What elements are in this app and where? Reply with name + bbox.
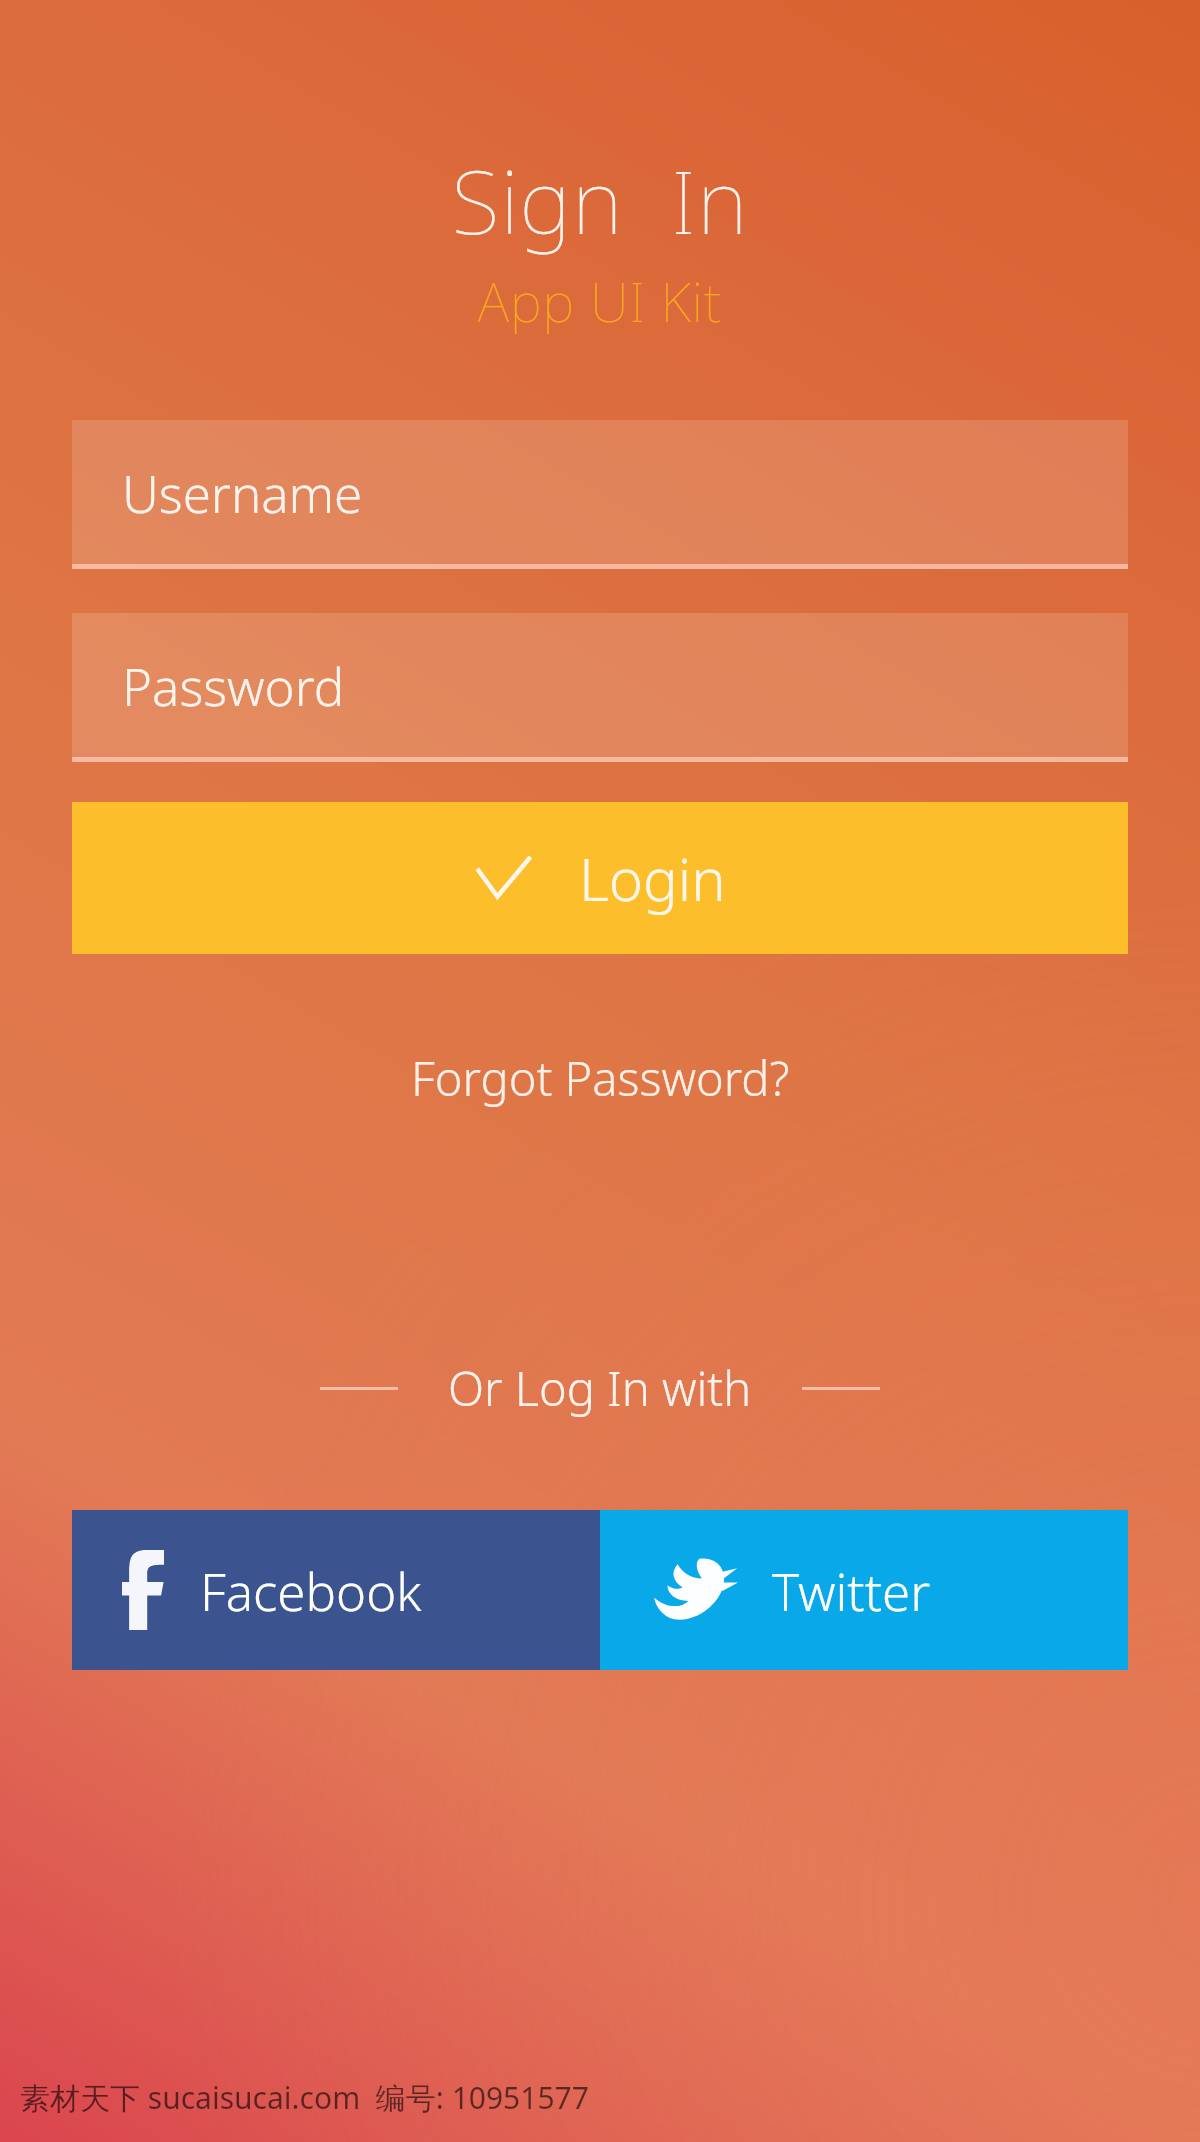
button[interactable]: Login: [72, 802, 1128, 954]
staticText: Sign In: [0, 140, 1200, 260]
button[interactable]: Facebook logo: [72, 1510, 600, 1670]
button[interactable]: Forgot Password?: [0, 1046, 1200, 1110]
staticText: Forgot Password?: [411, 1046, 790, 1110]
staticText: App UI Kit: [0, 264, 1200, 338]
button[interactable]: Password: [72, 613, 1128, 762]
staticText: Login: [579, 839, 726, 918]
staticText: 素材天下 sucaisucai.com 编号: 10951577: [20, 2077, 589, 2118]
other: Facebook logo: [122, 1550, 164, 1630]
staticText: Twitter: [772, 1556, 931, 1625]
other: Twitter logo: [654, 1556, 738, 1624]
button[interactable]: Twitter logo: [600, 1510, 1128, 1670]
button[interactable]: Username: [72, 420, 1128, 569]
staticText: Username: [122, 458, 363, 527]
staticText: Password: [122, 651, 345, 720]
staticText: Facebook: [200, 1556, 422, 1625]
staticText: Or Log In with: [448, 1356, 752, 1420]
